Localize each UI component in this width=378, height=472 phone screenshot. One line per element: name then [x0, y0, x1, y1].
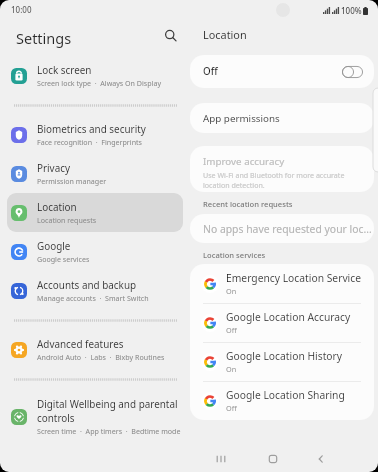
staticText: Off [226, 403, 237, 413]
staticText: 10:00 [11, 4, 32, 15]
staticText: Screen lock type · Always On Display [37, 78, 162, 88]
staticText: Biometrics and security [37, 122, 146, 135]
staticText: Manage accounts · Smart Switch [37, 293, 149, 303]
staticText: Accounts and backup [37, 278, 137, 291]
button[interactable]: Location [7, 193, 183, 232]
staticText: controls [37, 411, 75, 424]
staticText: Digital Wellbeing and parental [37, 397, 178, 410]
staticText: Face recognition · Fingerprints [37, 137, 142, 147]
staticText: Location requests [37, 215, 97, 225]
button[interactable]: Google Location Accuracy [190, 303, 374, 342]
button[interactable]: Biometrics and security [7, 115, 183, 154]
staticText: Recent location requests [203, 199, 293, 209]
staticText: On [226, 364, 237, 374]
staticText: Permission manager [37, 176, 107, 186]
staticText: Settings [16, 28, 72, 48]
button[interactable]: Back [308, 446, 334, 472]
button[interactable]: Off [190, 55, 374, 88]
button[interactable]: Recents [208, 446, 234, 472]
staticText: On [226, 286, 237, 296]
staticText: Emergency Location Service [226, 271, 362, 285]
staticText: Google Location Accuracy [226, 310, 351, 324]
staticText: Google [37, 239, 71, 252]
button[interactable]: App permissions [190, 103, 374, 133]
button[interactable]: Accounts and backup [7, 271, 183, 310]
button[interactable]: Emergency Location Service [190, 264, 374, 303]
button[interactable]: Home [260, 446, 286, 472]
staticText: Privacy [37, 161, 70, 174]
button[interactable]: Google Location History [190, 342, 374, 381]
button[interactable]: Advanced features [7, 330, 183, 369]
button[interactable]: Lock screen [7, 56, 183, 95]
staticText: Off [226, 325, 237, 335]
staticText: Google Location History [226, 349, 343, 363]
button[interactable]: Google Location Sharing [190, 381, 374, 420]
staticText: Google Location Sharing [226, 388, 345, 402]
staticText: Location [37, 200, 77, 213]
staticText: Off [203, 65, 218, 78]
staticText: Location [203, 27, 247, 42]
staticText: Screen time · App timers · Bedtime mode [37, 426, 181, 436]
staticText: Use Wi-Fi and Bluetooth for more accurat… [203, 170, 361, 190]
staticText: No apps have requested your locat.. [203, 222, 372, 236]
staticText: Location services [203, 250, 266, 260]
staticText: Google services [37, 254, 90, 264]
button[interactable]: Google [7, 232, 183, 271]
staticText: Improve accuracy [203, 155, 285, 168]
staticText: Advanced features [37, 337, 124, 350]
button[interactable]: Digital Wellbeing and parental [7, 393, 183, 440]
staticText: App permissions [203, 112, 280, 125]
staticText: Lock screen [37, 63, 92, 76]
staticText: Android Auto · Labs · Bixby Routines [37, 352, 165, 362]
button[interactable]: Privacy [7, 154, 183, 193]
staticText: 100% [341, 5, 362, 16]
button[interactable]: Search [157, 22, 185, 50]
